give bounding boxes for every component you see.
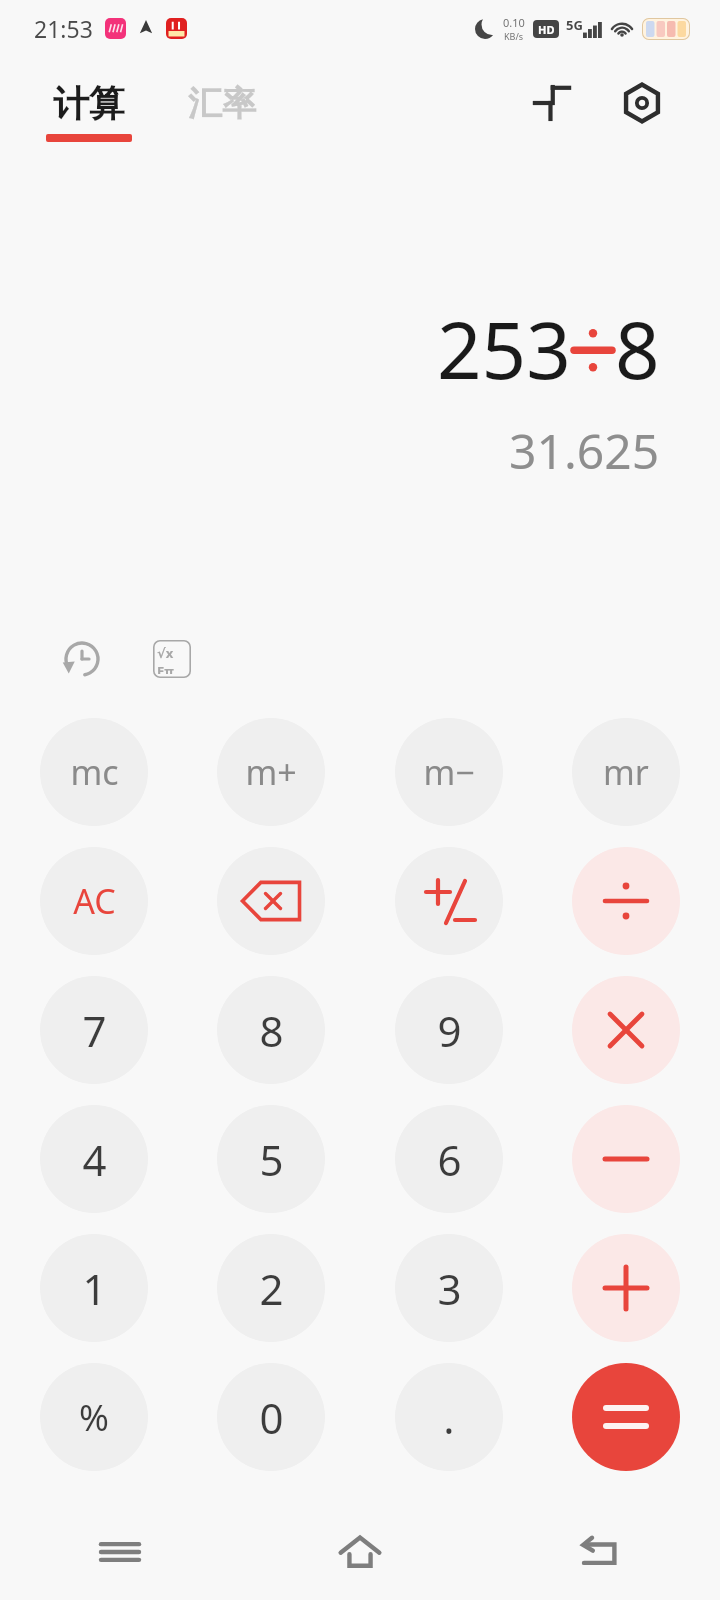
button[interactable]: 1 — [40, 1234, 148, 1342]
staticText: 汇率 — [188, 82, 256, 125]
button[interactable]: m− — [395, 718, 503, 826]
button[interactable]: Back — [480, 1504, 720, 1600]
staticText: 1 — [82, 1260, 107, 1317]
staticText: 计算 — [53, 81, 125, 126]
button[interactable]: Add — [572, 1234, 680, 1342]
button[interactable]: % — [40, 1363, 148, 1471]
staticText: 5 — [259, 1131, 284, 1188]
staticText: AC — [73, 878, 116, 924]
staticText: m+ — [245, 749, 297, 795]
staticText: 9 — [437, 1002, 462, 1059]
button[interactable]: Settings — [614, 75, 670, 131]
button[interactable]: m+ — [217, 718, 325, 826]
button[interactable]: 8 — [217, 976, 325, 1084]
button[interactable]: 3 — [395, 1234, 503, 1342]
button[interactable]: 5 — [217, 1105, 325, 1213]
staticText: % — [79, 1393, 109, 1442]
button[interactable]: AC — [40, 847, 148, 955]
button[interactable]: Plus minus — [395, 847, 503, 955]
staticText: 4 — [82, 1131, 107, 1188]
staticText: 8 — [615, 296, 660, 402]
button[interactable]: 汇率 — [182, 86, 262, 137]
button[interactable]: 0 — [217, 1363, 325, 1471]
button[interactable]: Home — [240, 1504, 480, 1600]
button[interactable]: Subtract — [572, 1105, 680, 1213]
staticText: m− — [423, 749, 475, 795]
staticText: mc — [70, 749, 119, 795]
staticText: 2 — [259, 1260, 284, 1317]
button[interactable]: 7 — [40, 976, 148, 1084]
staticText: 0.10 — [503, 15, 525, 30]
button[interactable]: mc — [40, 718, 148, 826]
staticText: 21:53 — [34, 13, 93, 44]
staticText: 31.625 — [509, 418, 660, 483]
staticText: Eπ — [157, 662, 187, 674]
staticText: 8 — [259, 1002, 284, 1059]
button[interactable]: Delete — [217, 847, 325, 955]
button[interactable]: Recents — [0, 1504, 240, 1600]
button[interactable]: 计算 — [40, 77, 138, 146]
staticText: √x — [157, 644, 187, 662]
button[interactable]: Scientific mode — [146, 633, 198, 685]
staticText: 6 — [437, 1131, 462, 1188]
button[interactable]: 2 — [217, 1234, 325, 1342]
button[interactable]: mr — [572, 718, 680, 826]
staticText: mr — [603, 749, 649, 795]
button[interactable]: 9 — [395, 976, 503, 1084]
button[interactable]: 6 — [395, 1105, 503, 1213]
staticText: 0 — [259, 1389, 284, 1446]
button[interactable]: 4 — [40, 1105, 148, 1213]
button[interactable]: History — [56, 633, 108, 685]
staticText: 3 — [437, 1260, 462, 1317]
staticText: HD — [538, 22, 555, 37]
button[interactable]: Multiply — [572, 976, 680, 1084]
button[interactable]: Equals — [572, 1363, 680, 1471]
staticText: 5G — [566, 16, 583, 34]
staticText: . — [443, 1389, 455, 1446]
button[interactable]: . — [395, 1363, 503, 1471]
button[interactable]: Divide — [572, 847, 680, 955]
staticText: KB/s — [504, 30, 524, 42]
staticText: 7 — [82, 1002, 107, 1059]
button[interactable]: Unit conversion — [524, 75, 580, 131]
staticText: 253 — [437, 296, 571, 402]
